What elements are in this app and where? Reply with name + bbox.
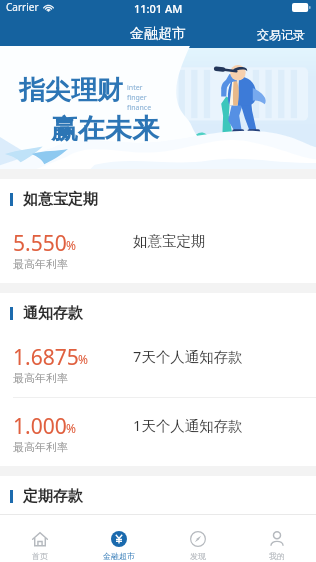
- staticText: %: [66, 420, 76, 436]
- button[interactable]: 我的: [237, 515, 316, 561]
- staticText: 金融超市: [130, 25, 186, 43]
- staticText: %: [78, 351, 88, 367]
- staticText: Carrier: [6, 0, 39, 14]
- other: 首页: [32, 531, 48, 547]
- button[interactable]: 交易记录: [245, 27, 316, 42]
- staticText: 金融超市: [103, 551, 135, 561]
- button[interactable]: 5.550: [0, 215, 316, 283]
- other: 我的: [269, 531, 285, 547]
- staticText: inter: [127, 83, 143, 93]
- staticText: %: [66, 237, 76, 253]
- staticText: 如意宝定期: [23, 190, 98, 209]
- staticText: 交易记录: [257, 27, 305, 42]
- staticText: 如意宝定期: [133, 232, 206, 250]
- staticText: 7天个人通知存款: [133, 346, 243, 366]
- staticText: 发现: [190, 551, 206, 561]
- button[interactable]: 金融超市: [79, 515, 158, 561]
- staticText: 我的: [269, 551, 285, 561]
- staticText: 最高年利率: [13, 440, 68, 454]
- staticText: 指尖理财: [19, 74, 123, 107]
- staticText: 5.550: [13, 229, 67, 258]
- button[interactable]: 发现: [158, 515, 237, 561]
- staticText: 通知存款: [23, 304, 83, 323]
- staticText: 首页: [32, 551, 48, 561]
- other: 金融超市: [111, 531, 127, 547]
- staticText: 最高年利率: [13, 257, 68, 271]
- staticText: 定期存款: [23, 487, 83, 506]
- button[interactable]: 1.000: [0, 398, 316, 466]
- button[interactable]: 首页: [0, 515, 79, 561]
- staticText: 1天个人通知存款: [133, 415, 243, 435]
- staticText: 11:01 AM: [134, 1, 183, 16]
- staticText: finger: [127, 93, 147, 103]
- staticText: finance: [127, 103, 152, 113]
- other: 发现: [190, 531, 206, 547]
- staticText: 最高年利率: [13, 371, 68, 385]
- button[interactable]: 1.6875: [0, 329, 316, 397]
- staticText: 赢在未来: [51, 112, 159, 146]
- staticText: 1.000: [13, 412, 67, 441]
- staticText: 1.6875: [13, 343, 79, 372]
